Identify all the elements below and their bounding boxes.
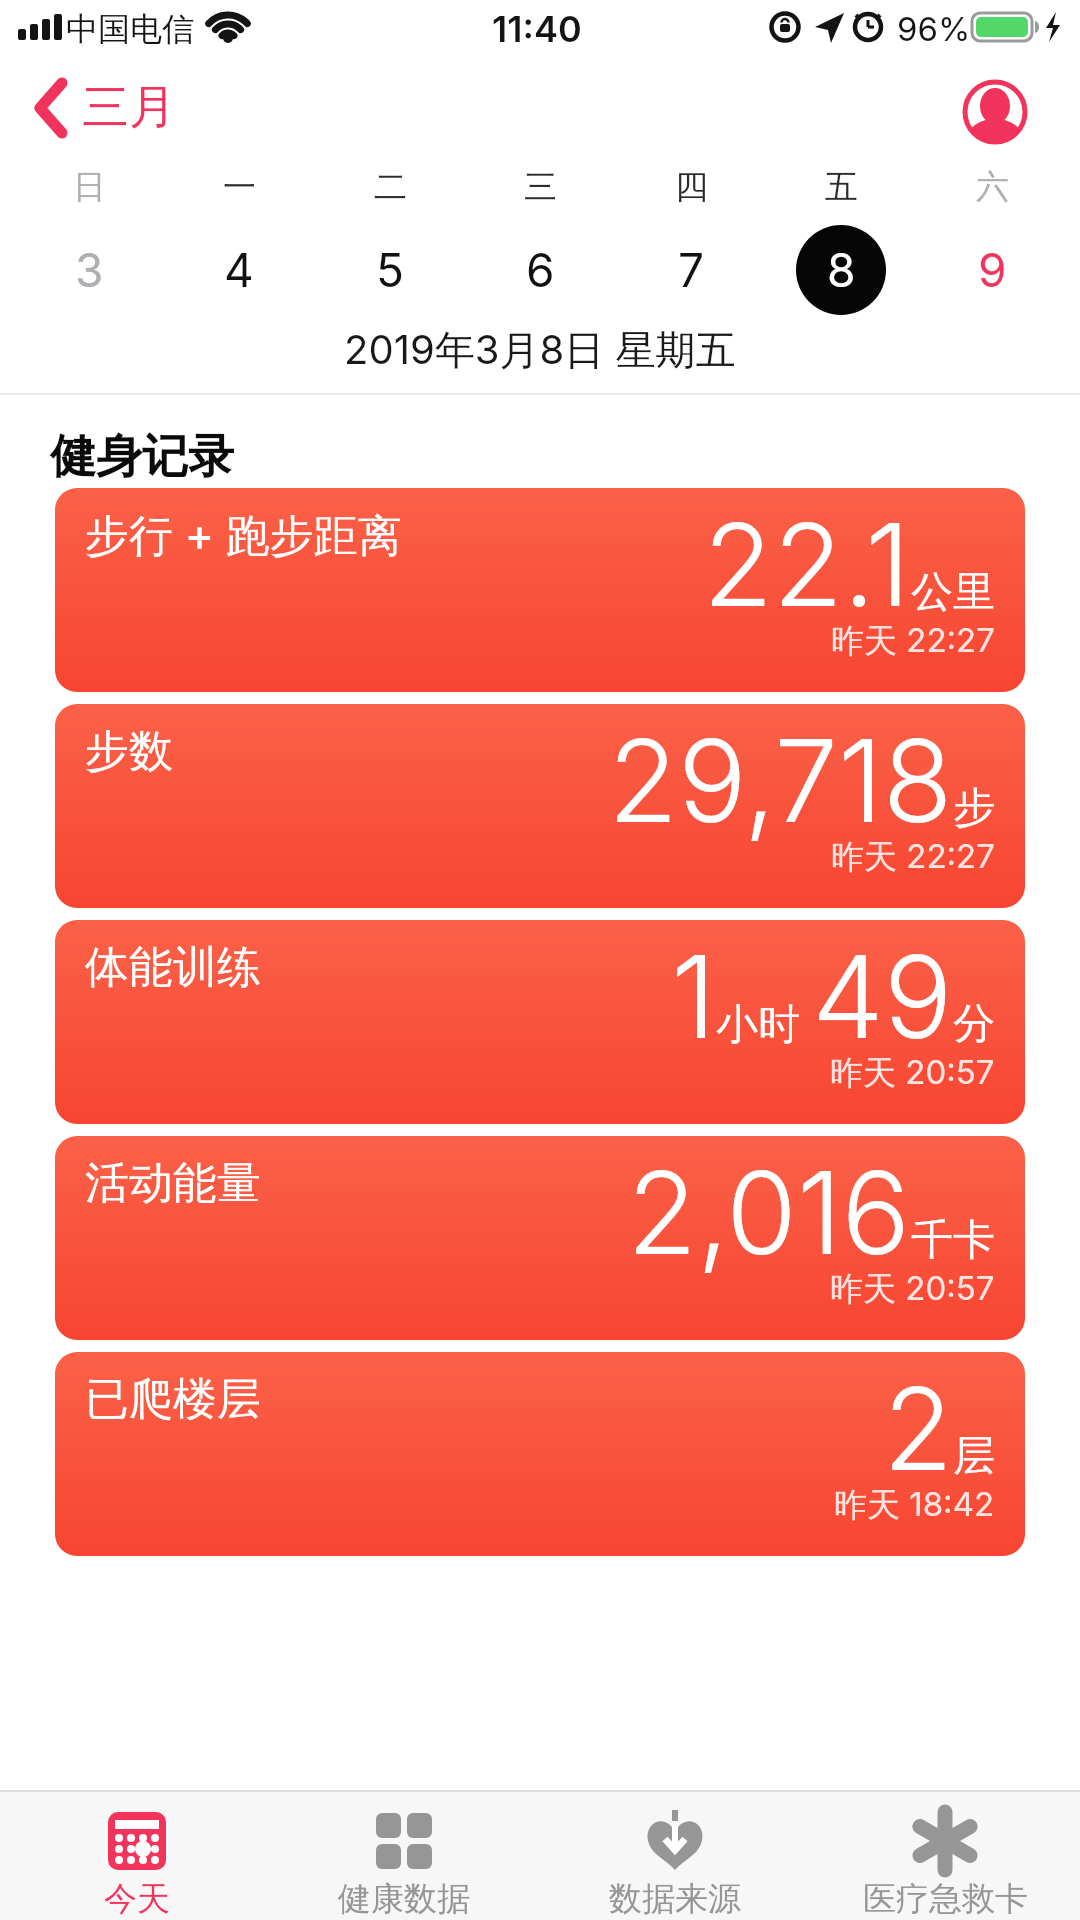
staticText: 29,718 [608, 712, 953, 850]
staticText: 昨天 22:27 [831, 620, 995, 662]
button[interactable]: 已爬楼层 [55, 1352, 1025, 1556]
staticText: 已爬楼层 [85, 1372, 261, 1427]
staticText: 22.1 [703, 496, 911, 634]
button[interactable]: 步行 + 跑步距离 [55, 488, 1025, 692]
staticText: 昨天 20:57 [830, 1268, 995, 1310]
button[interactable]: 活动能量 [55, 1136, 1025, 1340]
staticText: 6 [526, 242, 555, 298]
staticText: 小时 [716, 998, 812, 1051]
staticText: 96% [897, 9, 971, 49]
staticText: 步 [953, 782, 995, 835]
staticText: 3 [75, 242, 104, 298]
staticText: 11:40 [492, 7, 582, 51]
button[interactable]: 步数 [55, 704, 1025, 908]
staticText: 49 [812, 928, 953, 1066]
button[interactable]: 三月 [33, 78, 176, 137]
staticText: 健康数据 [338, 1878, 470, 1920]
staticText: 中国电信 [66, 9, 194, 49]
staticText: 2019年3月8日 星期五 [344, 325, 736, 376]
staticText: 二 [374, 166, 407, 208]
button[interactable]: 今天 [42, 1790, 232, 1920]
staticText: 9 [978, 242, 1007, 298]
staticText: 层 [953, 1430, 995, 1483]
staticText: 昨天 18:42 [834, 1484, 995, 1526]
staticText: 三 [524, 166, 557, 208]
button[interactable] [796, 225, 886, 315]
staticText: 昨天 22:27 [831, 836, 995, 878]
staticText: 数据来源 [609, 1878, 741, 1920]
staticText: 一 [223, 166, 256, 208]
staticText: 体能训练 [85, 940, 261, 995]
button[interactable]: 数据来源 [580, 1790, 770, 1920]
staticText: 千卡 [911, 1214, 995, 1267]
staticText: 健身记录 [50, 428, 234, 486]
staticText: 公里 [911, 566, 995, 619]
staticText: 五 [825, 166, 858, 208]
staticText: 医疗急救卡 [863, 1878, 1028, 1920]
staticText: 活动能量 [85, 1156, 261, 1211]
staticText: 分 [953, 998, 995, 1051]
staticText: 昨天 20:57 [830, 1052, 995, 1094]
staticText: 步数 [85, 724, 173, 779]
staticText: 8 [827, 242, 856, 298]
staticText: 六 [976, 166, 1009, 208]
staticText: 2 [883, 1360, 953, 1498]
staticText: 今天 [104, 1878, 170, 1920]
staticText: 7 [678, 242, 705, 298]
staticText: 三月 [82, 78, 176, 137]
staticText: 1 [671, 928, 716, 1066]
button[interactable] [962, 79, 1028, 145]
button[interactable]: 体能训练 [55, 920, 1025, 1124]
staticText: 步行 + 跑步距离 [85, 508, 402, 564]
staticText: 2,016 [627, 1144, 911, 1282]
staticText: 四 [675, 166, 708, 208]
staticText: 日 [73, 166, 106, 208]
staticText: 5 [376, 242, 404, 298]
button[interactable]: 健康数据 [309, 1790, 499, 1920]
staticText: 4 [224, 242, 254, 298]
button[interactable]: 医疗急救卡 [850, 1790, 1040, 1920]
